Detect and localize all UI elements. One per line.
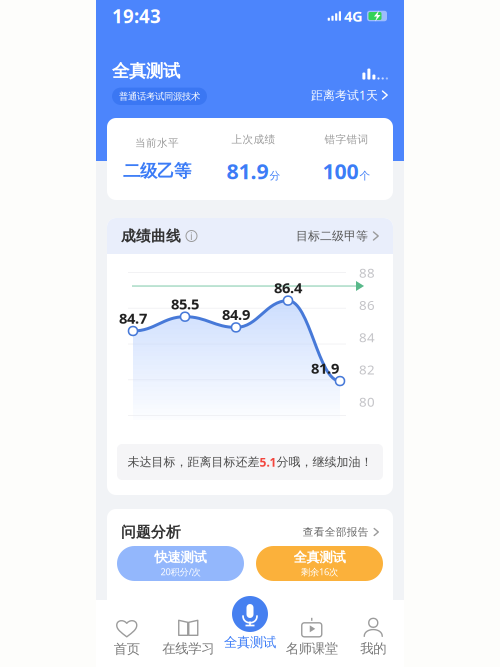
staticText: 86.4 (274, 278, 302, 297)
staticText: i (190, 229, 193, 243)
button[interactable]: 全真测试 (224, 596, 276, 650)
staticText: 84.9 (222, 305, 250, 324)
staticText: 名师课堂 (286, 640, 338, 657)
button[interactable]: 全真测试 (256, 546, 383, 581)
button[interactable]: 在线学习 (157, 618, 219, 657)
staticText: 在线学习 (162, 640, 214, 657)
staticText: 84.7 (119, 308, 147, 328)
staticText: 上次成绩 (231, 133, 275, 146)
staticText: 距离考试1天 (311, 87, 378, 103)
staticText: 100 (322, 157, 358, 185)
staticText: 82 (359, 360, 375, 378)
staticText: 全真测试 (224, 634, 276, 650)
staticText: 86 (359, 296, 375, 314)
staticText: 我的 (360, 640, 386, 657)
button[interactable]: 目标二级甲等 (296, 229, 379, 243)
staticText: 20积分/次 (160, 565, 200, 578)
staticText: 问题分析 (121, 523, 181, 541)
staticText: 分哦，继续加油！ (276, 455, 372, 469)
staticText: 剩余16次 (301, 565, 338, 578)
staticText: 4G (344, 6, 363, 26)
staticText: 成绩曲线 (121, 227, 181, 245)
staticText: 查看全部报告 (303, 525, 369, 538)
button[interactable]: 距离考试1天 (311, 87, 388, 103)
button[interactable]: 我的 (342, 618, 404, 657)
staticText: 19:43 (112, 4, 161, 28)
staticText: 81.9 (226, 157, 268, 185)
staticText: 分 (269, 169, 280, 182)
staticText: 普通话考试同源技术 (119, 90, 200, 102)
staticText: 目标二级甲等 (296, 229, 368, 243)
staticText: 二级乙等 (123, 160, 191, 182)
staticText: 81.9 (311, 358, 339, 378)
staticText: 快速测试 (154, 549, 206, 565)
button[interactable]: 首页 (96, 618, 157, 657)
staticText: 当前水平 (135, 136, 179, 149)
staticText: 未达目标，距离目标还差 (127, 455, 259, 469)
staticText: 全真测试 (293, 549, 345, 565)
button[interactable]: 名师课堂 (281, 618, 342, 657)
staticText: 首页 (114, 641, 140, 657)
staticText: 80 (359, 393, 375, 410)
button[interactable]: 快速测试 (117, 546, 244, 581)
button[interactable]: 查看全部报告 (303, 525, 379, 538)
staticText: 错字错词 (324, 133, 368, 146)
staticText: 个 (359, 169, 370, 182)
staticText: 88 (359, 264, 375, 281)
staticText: 85.5 (171, 294, 199, 313)
staticText: 全真测试 (112, 60, 180, 81)
staticText: 84 (359, 328, 375, 346)
staticText: 5.1 (259, 454, 276, 470)
